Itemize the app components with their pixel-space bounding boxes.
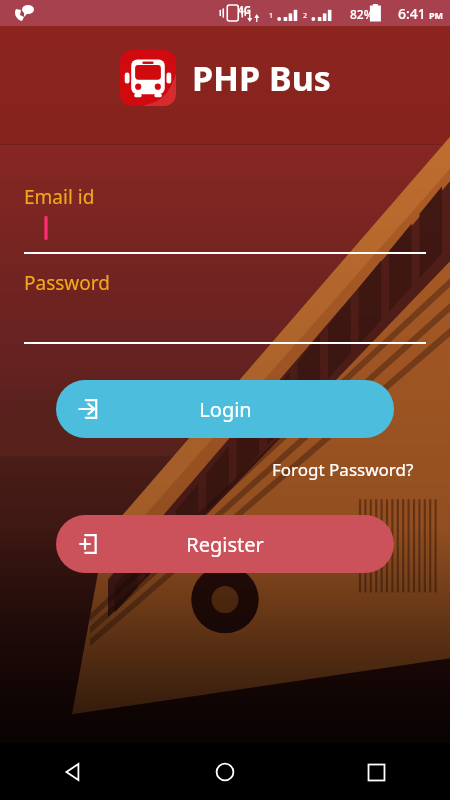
staticText: 82% [350, 6, 374, 22]
button[interactable] [24, 212, 426, 254]
staticText: 1 [269, 11, 274, 21]
staticText: PM [429, 9, 444, 21]
other: Register [78, 531, 104, 557]
staticText: Forogt Password? [272, 458, 414, 481]
staticText: 4G [238, 3, 251, 17]
staticText: Login [199, 396, 252, 423]
staticText: Register [186, 531, 264, 558]
button[interactable]: Home [203, 750, 247, 794]
button[interactable]: Login [56, 380, 394, 438]
button[interactable]: Forogt Password? [268, 454, 418, 485]
button[interactable]: Back [52, 750, 96, 794]
button[interactable]: Recent apps [354, 750, 398, 794]
button[interactable]: Register [56, 515, 394, 573]
staticText: PHP Bus [192, 55, 331, 101]
staticText: 6:41 [398, 4, 426, 23]
staticText: 2 [303, 11, 308, 21]
button[interactable] [24, 298, 426, 344]
staticText: Email id [24, 184, 95, 210]
other: Login [78, 396, 104, 422]
staticText: Password [24, 270, 110, 296]
